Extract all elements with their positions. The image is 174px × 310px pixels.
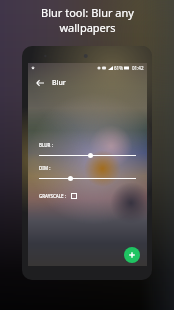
button[interactable]: GRAYSCALE : [39,193,77,199]
staticText: wallpapers [59,20,116,35]
staticText: DIM : [39,165,51,171]
staticText: GRAYSCALE : [39,193,67,199]
staticText: Blur tool: Blur any [41,5,134,20]
button[interactable]: Apply blur [124,247,140,263]
staticText: 01:42 [132,65,144,71]
staticText: Blur [52,78,66,88]
staticText: BLUR : [39,142,53,148]
staticText: 61% [114,65,123,71]
button[interactable]: Back [33,76,47,90]
